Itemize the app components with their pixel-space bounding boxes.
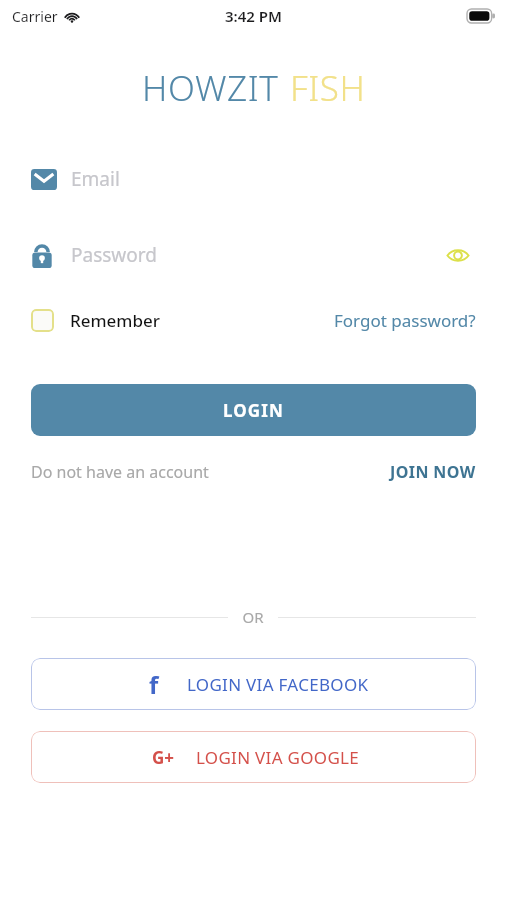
staticText: 3:42 PM	[225, 6, 282, 26]
staticText: Email	[71, 166, 120, 192]
staticText: HOWZIT	[142, 64, 279, 112]
button[interactable]: Show password	[440, 237, 476, 273]
staticText: LOGIN VIA FACEBOOK	[187, 673, 369, 696]
button[interactable]: G+	[31, 731, 476, 783]
staticText: f	[149, 668, 159, 701]
button[interactable]: Email	[31, 161, 476, 197]
button[interactable]: Remember	[31, 303, 160, 337]
staticText: LOGIN VIA GOOGLE	[196, 746, 360, 769]
button[interactable]: f	[31, 658, 476, 710]
button[interactable]: Password	[31, 237, 440, 273]
staticText: Do not have an account	[31, 461, 209, 483]
staticText: JOIN NOW	[390, 461, 476, 483]
staticText: LOGIN	[223, 399, 284, 422]
button[interactable]: JOIN NOW	[390, 457, 476, 487]
staticText: Carrier	[12, 7, 58, 26]
staticText: FISH	[290, 64, 366, 112]
staticText: Forgot password?	[334, 309, 476, 332]
staticText: OR	[242, 607, 264, 627]
button[interactable]: LOGIN	[31, 384, 476, 436]
staticText: G+	[152, 746, 175, 769]
staticText: Password	[71, 242, 157, 268]
staticText: Remember	[70, 309, 160, 332]
button[interactable]: Forgot password?	[334, 303, 476, 337]
